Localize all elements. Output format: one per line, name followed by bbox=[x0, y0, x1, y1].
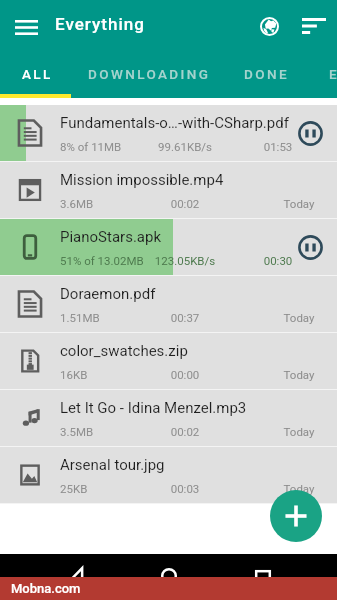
staticText: PianoStars.apk bbox=[60, 228, 162, 246]
button[interactable]: DOWNLOADING bbox=[71, 57, 223, 98]
staticText: Mission impossible.mp4 bbox=[60, 171, 224, 189]
staticText: Let It Go - Idina Menzel.mp3 bbox=[60, 399, 247, 417]
button[interactable]: Fundamentals-o…-with-CSharp.pdf bbox=[0, 105, 337, 162]
staticText: EXPIRED bbox=[329, 66, 337, 82]
staticText: Everything bbox=[55, 14, 145, 34]
staticText: 00:30 bbox=[218, 254, 337, 267]
staticText: 00:00 bbox=[125, 368, 245, 381]
staticText: Mobna.com bbox=[11, 581, 81, 596]
staticText: Today bbox=[239, 311, 337, 324]
button[interactable]: DONE bbox=[223, 57, 305, 98]
staticText: Today bbox=[239, 197, 337, 210]
staticText: 01:53 bbox=[218, 140, 337, 153]
staticText: Today bbox=[239, 482, 337, 495]
staticText: Arsenal tour.jpg bbox=[60, 456, 165, 474]
staticText: 99.61KB/s bbox=[125, 140, 245, 153]
button[interactable]: Recent apps bbox=[255, 570, 271, 586]
button[interactable]: Arsenal tour.jpg bbox=[0, 447, 337, 504]
button[interactable]: PianoStars.apk bbox=[0, 219, 337, 276]
button[interactable]: Sort bbox=[295, 7, 333, 45]
button[interactable]: Menu bbox=[7, 8, 45, 46]
staticText: Today bbox=[239, 368, 337, 381]
staticText: ALL bbox=[22, 66, 53, 82]
button[interactable]: ALL bbox=[0, 57, 71, 98]
staticText: 25KB bbox=[60, 482, 88, 495]
staticText: 3.5MB bbox=[60, 425, 94, 438]
button[interactable]: Open browser bbox=[250, 7, 288, 45]
staticText: Fundamentals-o…-with-CSharp.pdf bbox=[60, 114, 289, 132]
staticText: 00:02 bbox=[125, 197, 245, 210]
staticText: 51% of 13.02MB bbox=[60, 254, 144, 267]
staticText: DONE bbox=[244, 66, 289, 82]
staticText: color_swatches.zip bbox=[60, 342, 188, 360]
staticText: 00:37 bbox=[125, 311, 245, 324]
staticText: 123.05KB/s bbox=[125, 254, 245, 267]
staticText: 00:02 bbox=[125, 425, 245, 438]
button[interactable]: Pause bbox=[298, 121, 323, 146]
staticText: 00:03 bbox=[125, 482, 245, 495]
button[interactable]: Mission impossible.mp4 bbox=[0, 162, 337, 219]
button[interactable]: Back bbox=[66, 567, 83, 584]
button[interactable]: Home bbox=[161, 568, 177, 584]
staticText: DOWNLOADING bbox=[88, 66, 211, 82]
button[interactable]: EXPIRED bbox=[317, 57, 337, 98]
staticText: Doraemon.pdf bbox=[60, 285, 156, 303]
button[interactable]: Pause bbox=[298, 235, 323, 260]
button[interactable]: Doraemon.pdf bbox=[0, 276, 337, 333]
button[interactable]: color_swatches.zip bbox=[0, 333, 337, 390]
staticText: 8% of 11MB bbox=[60, 140, 122, 153]
staticText: 1.51MB bbox=[60, 311, 100, 324]
staticText: 16KB bbox=[60, 368, 88, 381]
button[interactable]: New download bbox=[270, 490, 322, 542]
button[interactable]: Let It Go - Idina Menzel.mp3 bbox=[0, 390, 337, 447]
staticText: 3.6MB bbox=[60, 197, 94, 210]
staticText: Today bbox=[239, 425, 337, 438]
